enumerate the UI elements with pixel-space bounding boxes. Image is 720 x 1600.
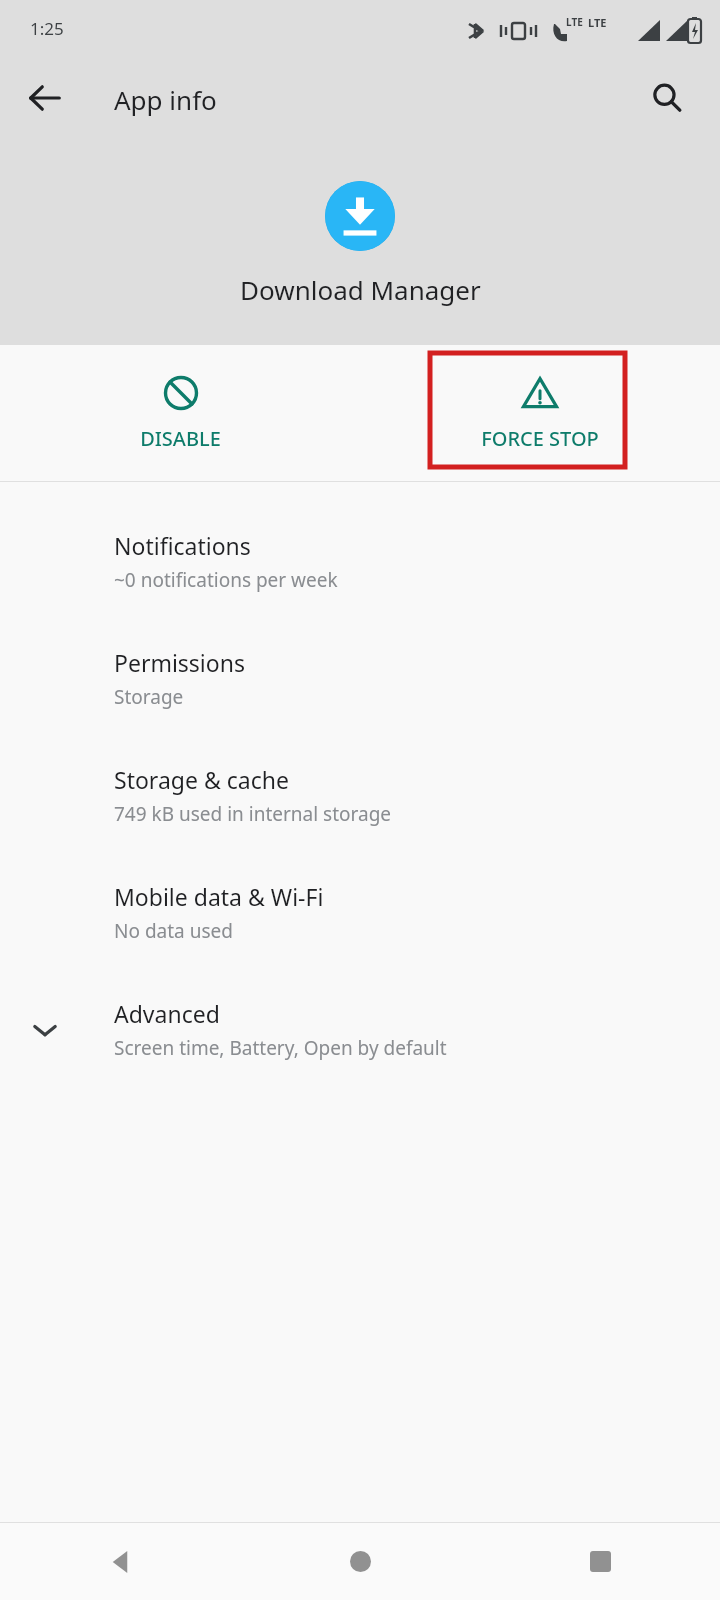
button[interactable]: FORCE STOP: [457, 365, 623, 462]
button[interactable]: DISABLE: [116, 365, 245, 462]
staticText: Notifications: [114, 530, 251, 561]
button[interactable]: Permissions: [0, 620, 720, 737]
staticText: 1:25: [30, 17, 64, 40]
staticText: LTE: [566, 15, 583, 29]
staticText: Storage: [114, 684, 184, 710]
staticText: App info: [114, 82, 217, 117]
button[interactable]: Notifications: [0, 503, 720, 620]
button[interactable]: Back: [13, 66, 77, 130]
staticText: Permissions: [114, 647, 245, 678]
staticText: Mobile data & Wi-Fi: [114, 881, 324, 912]
staticText: LTE: [588, 15, 607, 30]
staticText: Download Manager: [240, 272, 481, 307]
staticText: ~0 notifications per week: [114, 567, 338, 593]
button[interactable]: Mobile data & Wi-Fi: [0, 854, 720, 971]
staticText: No data used: [114, 918, 233, 944]
staticText: FORCE STOP: [481, 425, 599, 452]
button[interactable]: Storage & cache: [0, 737, 720, 854]
staticText: Screen time, Battery, Open by default: [114, 1035, 447, 1061]
button[interactable]: Recent apps: [480, 1523, 720, 1600]
button[interactable]: Advanced: [0, 971, 720, 1088]
staticText: Advanced: [114, 998, 220, 1029]
button[interactable]: Home: [240, 1523, 480, 1600]
button[interactable]: Search: [635, 66, 699, 130]
staticText: Storage & cache: [114, 764, 289, 795]
staticText: DISABLE: [140, 425, 221, 452]
button[interactable]: Back: [0, 1523, 240, 1600]
staticText: 749 kB used in internal storage: [114, 801, 392, 827]
